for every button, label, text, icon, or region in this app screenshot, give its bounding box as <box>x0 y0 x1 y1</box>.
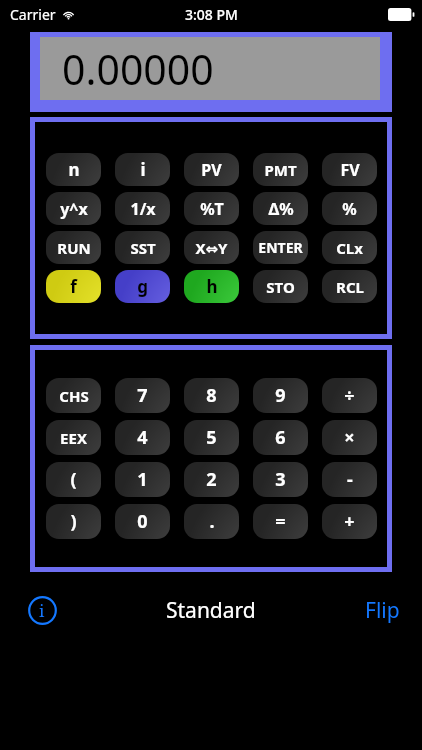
button[interactable]: FV <box>322 153 377 186</box>
staticText: STO <box>266 277 295 297</box>
staticText: CLx <box>336 238 363 258</box>
staticText: × <box>344 425 355 450</box>
staticText: RUN <box>57 238 91 258</box>
button[interactable]: ) <box>46 504 101 539</box>
staticText: 3 <box>275 467 286 492</box>
button[interactable]: h <box>184 270 239 303</box>
staticText: y^x <box>60 198 88 220</box>
staticText: FV <box>340 159 360 181</box>
staticText: Δ% <box>268 198 294 220</box>
staticText: Flip <box>365 596 400 625</box>
button[interactable]: - <box>322 462 377 497</box>
staticText: 0 <box>137 509 148 534</box>
button[interactable]: Δ% <box>253 192 308 225</box>
staticText: 9 <box>275 383 286 408</box>
staticText: 0.00000 <box>62 41 214 97</box>
staticText: . <box>209 509 215 534</box>
button[interactable]: EEX <box>46 420 101 455</box>
staticText: X⇔Y <box>195 238 228 258</box>
button[interactable]: ENTER <box>253 231 308 264</box>
button[interactable]: CLx <box>322 231 377 264</box>
staticText: %T <box>200 198 224 220</box>
staticText: Carrier <box>10 5 56 24</box>
staticText: n <box>68 158 80 181</box>
button[interactable]: 7 <box>115 378 170 413</box>
staticText: ) <box>70 509 77 534</box>
staticText: h <box>206 275 218 298</box>
staticText: i <box>39 599 45 622</box>
staticText: 7 <box>137 383 148 408</box>
staticText: = <box>275 509 286 534</box>
staticText: % <box>342 198 357 220</box>
button[interactable]: + <box>322 504 377 539</box>
button[interactable]: STO <box>253 270 308 303</box>
staticText: 4 <box>137 425 148 450</box>
button[interactable]: = <box>253 504 308 539</box>
staticText: ( <box>70 467 77 492</box>
button[interactable]: × <box>322 420 377 455</box>
staticText: + <box>344 509 355 534</box>
button[interactable]: 5 <box>184 420 239 455</box>
button[interactable]: n <box>46 153 101 186</box>
button[interactable]: 1 <box>115 462 170 497</box>
staticText: EEX <box>60 428 87 448</box>
staticText: 1 <box>137 467 148 492</box>
staticText: i <box>140 158 146 181</box>
staticText: ENTER <box>258 238 303 257</box>
button[interactable]: PMT <box>253 153 308 186</box>
button[interactable]: f <box>46 270 101 303</box>
button[interactable]: ( <box>46 462 101 497</box>
button[interactable]: CHS <box>46 378 101 413</box>
button[interactable]: RCL <box>322 270 377 303</box>
button[interactable]: 4 <box>115 420 170 455</box>
button[interactable]: . <box>184 504 239 539</box>
staticText: PV <box>201 159 222 181</box>
staticText: 6 <box>275 425 286 450</box>
button[interactable]: Info <box>26 594 58 626</box>
button[interactable]: y^x <box>46 192 101 225</box>
button[interactable]: SST <box>115 231 170 264</box>
button[interactable]: RUN <box>46 231 101 264</box>
staticText: g <box>137 275 148 298</box>
button[interactable]: g <box>115 270 170 303</box>
button[interactable]: ÷ <box>322 378 377 413</box>
button[interactable]: 6 <box>253 420 308 455</box>
button[interactable]: 2 <box>184 462 239 497</box>
staticText: 2 <box>206 467 217 492</box>
button[interactable]: % <box>322 192 377 225</box>
button[interactable]: X⇔Y <box>184 231 239 264</box>
staticText: PMT <box>264 160 297 180</box>
staticText: RCL <box>336 277 364 297</box>
staticText: SST <box>130 238 156 258</box>
button[interactable]: 3 <box>253 462 308 497</box>
staticText: 8 <box>206 383 217 408</box>
button[interactable]: Flip <box>365 596 400 625</box>
button[interactable]: %T <box>184 192 239 225</box>
button[interactable]: 9 <box>253 378 308 413</box>
button[interactable]: 8 <box>184 378 239 413</box>
staticText: 5 <box>206 425 217 450</box>
button[interactable]: 0.00000 <box>30 32 392 112</box>
staticText: f <box>70 275 77 298</box>
button[interactable]: 0 <box>115 504 170 539</box>
staticText: 1/x <box>130 198 156 220</box>
staticText: 3:08 PM <box>185 5 238 24</box>
staticText: CHS <box>59 386 89 406</box>
button[interactable]: Standard <box>166 596 256 625</box>
button[interactable]: 1/x <box>115 192 170 225</box>
button[interactable]: PV <box>184 153 239 186</box>
button[interactable]: i <box>115 153 170 186</box>
staticText: ÷ <box>344 383 355 408</box>
staticText: - <box>347 467 353 492</box>
